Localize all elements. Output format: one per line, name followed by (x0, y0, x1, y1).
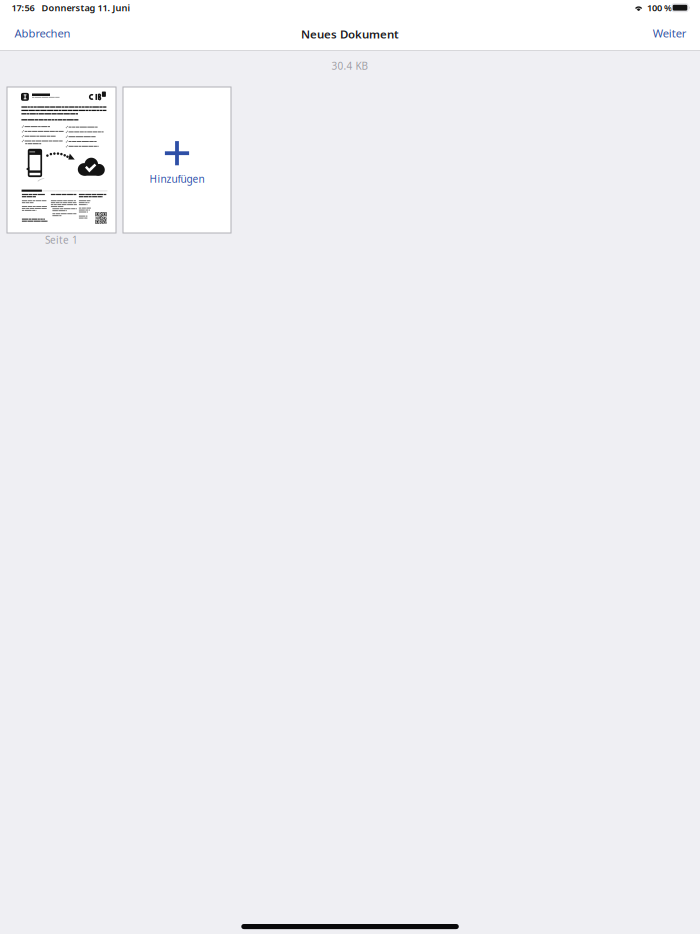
staticText: 100 % (647, 1, 672, 14)
staticText: Weiter (653, 25, 687, 41)
staticText: Donnerstag 11. Juni (41, 1, 130, 14)
button[interactable]: Weiter (647, 19, 693, 47)
button[interactable] (7, 87, 116, 233)
staticText: 17:56 (11, 1, 34, 14)
staticText: Neues Dokument (301, 26, 399, 42)
button[interactable]: Hinzufügen (123, 87, 231, 233)
button[interactable]: Abbrechen (9, 19, 77, 47)
staticText: 30.4 KB (331, 59, 368, 73)
staticText: Hinzufügen (149, 172, 204, 186)
staticText: Seite 1 (45, 233, 78, 247)
staticText: Abbrechen (15, 25, 71, 41)
